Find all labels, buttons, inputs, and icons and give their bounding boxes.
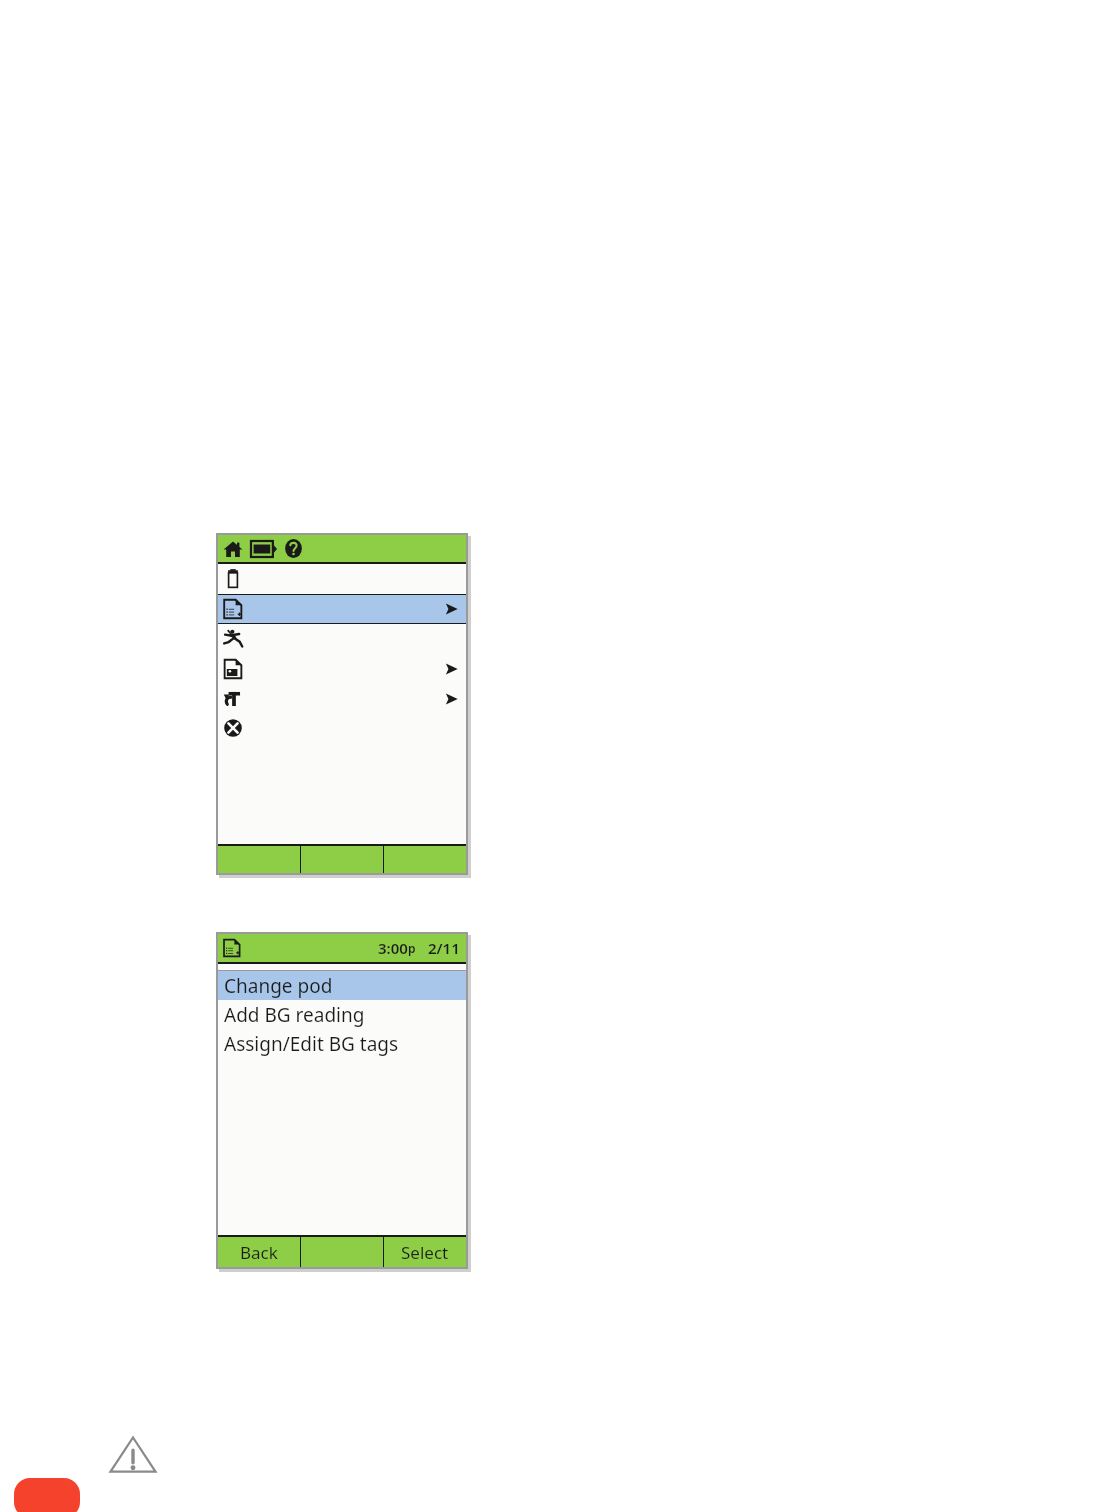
button[interactable] xyxy=(218,713,466,742)
staticText: Select xyxy=(401,1241,449,1264)
button[interactable] xyxy=(218,654,466,684)
button[interactable] xyxy=(218,595,466,623)
button[interactable] xyxy=(218,564,466,594)
staticText: Back xyxy=(240,1241,278,1264)
button[interactable] xyxy=(218,684,466,713)
staticText: Assign/Edit BG tags xyxy=(224,1031,399,1057)
button[interactable]: Home xyxy=(223,539,243,559)
staticText: 2/11 xyxy=(428,938,460,958)
staticText: Add BG reading xyxy=(224,1002,365,1028)
staticText: p xyxy=(408,940,416,956)
button[interactable]: Assign/Edit BG tags xyxy=(218,1029,466,1058)
button[interactable] xyxy=(218,624,466,654)
button[interactable]: Back xyxy=(218,1237,300,1267)
staticText: Change pod xyxy=(224,973,333,999)
button[interactable]: Select xyxy=(384,1237,466,1267)
staticText: 3:00 xyxy=(378,938,408,958)
button[interactable]: Change pod xyxy=(218,971,466,1000)
button[interactable]: Help xyxy=(284,539,303,558)
button[interactable]: Add BG reading xyxy=(218,1000,466,1029)
